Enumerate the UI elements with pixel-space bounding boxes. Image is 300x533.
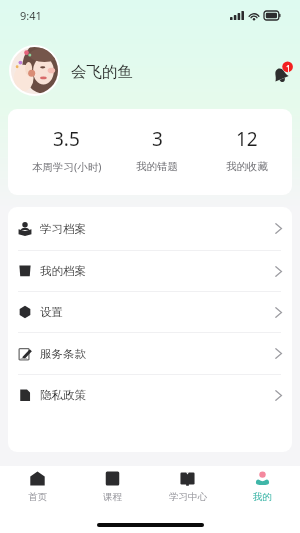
button[interactable]: 学习档案 xyxy=(8,207,292,250)
staticText: 3.5 xyxy=(53,126,80,152)
button[interactable]: 3 xyxy=(112,109,202,195)
staticText: 我的错题 xyxy=(136,160,178,173)
button[interactable]: 首页 xyxy=(0,466,75,504)
button[interactable]: 学习中心 xyxy=(150,466,225,504)
staticText: 我的收藏 xyxy=(226,160,268,173)
staticText: 9:41 xyxy=(20,8,42,23)
button[interactable]: Profile avatar xyxy=(11,47,58,94)
button[interactable]: 设置 xyxy=(8,292,292,332)
staticText: 学习档案 xyxy=(40,222,86,236)
staticText: 设置 xyxy=(40,305,63,319)
staticText: 3 xyxy=(152,126,163,152)
staticText: 隐私政策 xyxy=(40,388,86,402)
staticText: 学习中心 xyxy=(169,491,207,503)
button[interactable]: 3.5 xyxy=(21,109,112,195)
button[interactable]: 我的 xyxy=(225,466,300,504)
button[interactable]: Notifications xyxy=(269,59,295,85)
button[interactable]: 12 xyxy=(202,109,292,195)
staticText: 12 xyxy=(236,126,258,152)
button[interactable]: 服务条款 xyxy=(8,333,292,374)
staticText: 本周学习(小时) xyxy=(32,160,102,174)
staticText: 首页 xyxy=(28,491,47,503)
staticText: 我的 xyxy=(253,491,272,503)
button[interactable]: 隐私政策 xyxy=(8,375,292,415)
staticText: 我的档案 xyxy=(40,264,86,278)
button[interactable]: 我的档案 xyxy=(8,251,292,291)
staticText: 1 xyxy=(286,63,291,74)
button[interactable]: 课程 xyxy=(75,466,150,504)
staticText: 会飞的鱼 xyxy=(71,62,133,82)
staticText: 服务条款 xyxy=(40,347,86,361)
staticText: 课程 xyxy=(103,491,122,503)
